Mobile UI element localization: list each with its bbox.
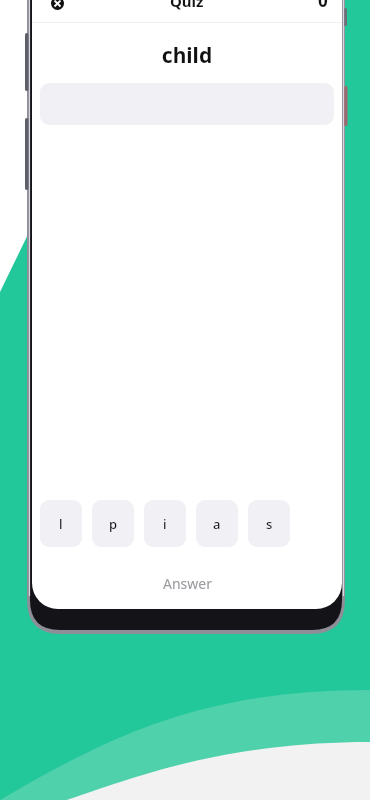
staticText: s xyxy=(266,515,273,533)
button[interactable]: s xyxy=(248,500,290,547)
button[interactable]: i xyxy=(144,500,186,547)
button[interactable]: a xyxy=(196,500,238,547)
button[interactable]: Close quiz xyxy=(42,0,72,17)
staticText: Answer xyxy=(163,574,212,593)
button[interactable]: Answer xyxy=(32,569,342,597)
staticText: a xyxy=(213,515,221,533)
staticText: child xyxy=(32,41,342,70)
staticText: i xyxy=(163,515,167,533)
button[interactable]: p xyxy=(92,500,134,547)
staticText: p xyxy=(109,515,118,533)
staticText: Quiz xyxy=(170,0,204,11)
button[interactable]: l xyxy=(40,500,82,547)
staticText: l xyxy=(59,515,63,533)
staticText: 0 xyxy=(318,0,328,12)
